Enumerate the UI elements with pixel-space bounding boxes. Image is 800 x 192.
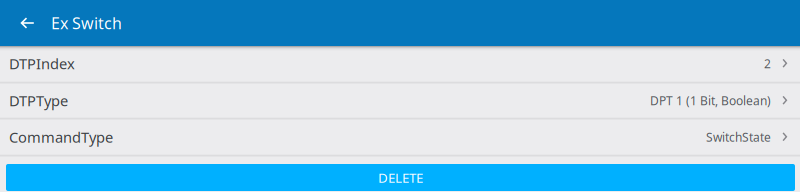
button[interactable]: Back — [6, 0, 50, 46]
staticText: DTPType — [9, 91, 68, 110]
button[interactable]: DELETE — [6, 164, 795, 191]
staticText: 2 — [764, 55, 771, 71]
staticText: DPT 1 (1 Bit, Boolean) — [650, 92, 771, 108]
staticText: DTPIndex — [9, 54, 75, 73]
staticText: SwitchState — [706, 129, 771, 145]
staticText: Ex Switch — [51, 12, 122, 34]
staticText: DELETE — [378, 169, 423, 186]
staticText: CommandType — [9, 127, 113, 147]
button[interactable]: DTPType — [0, 84, 800, 120]
button[interactable]: DTPIndex — [0, 46, 800, 84]
button[interactable]: CommandType — [0, 120, 800, 157]
